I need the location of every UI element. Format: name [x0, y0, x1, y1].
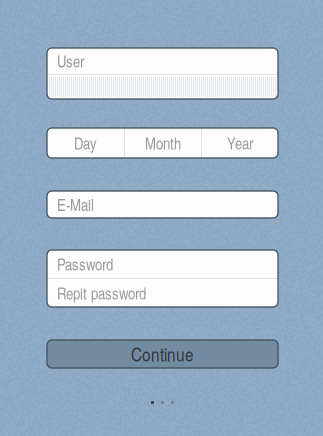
button[interactable]: Month	[125, 128, 201, 158]
staticText: Year	[227, 132, 253, 154]
staticText: Password	[57, 253, 113, 275]
staticText: Repit password	[57, 282, 146, 304]
staticText: Continue	[131, 341, 194, 367]
button[interactable]: Year	[202, 128, 278, 158]
button[interactable]: Day	[47, 128, 124, 158]
staticText: Month	[145, 132, 181, 154]
button[interactable]: Continue	[47, 340, 278, 368]
staticText: E-Mail	[57, 193, 94, 215]
staticText: User	[57, 50, 84, 72]
staticText: Day	[74, 132, 97, 154]
